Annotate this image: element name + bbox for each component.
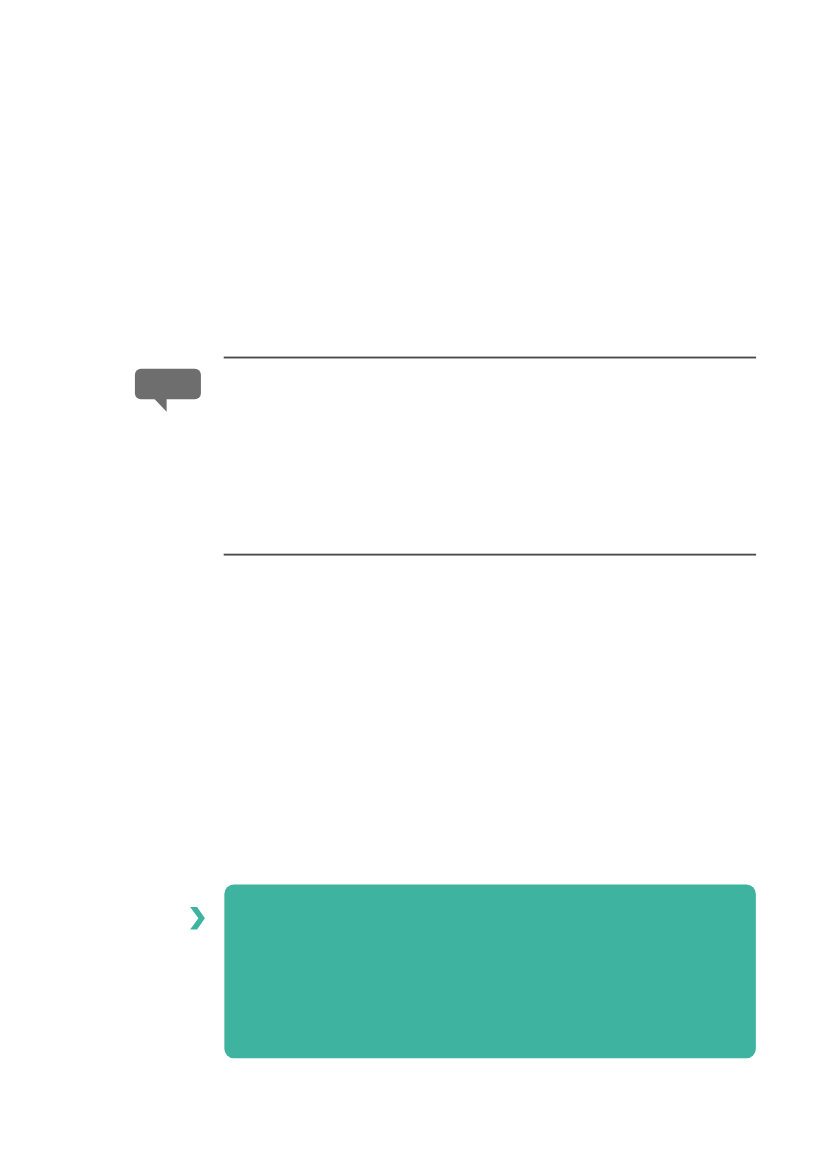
button[interactable]: Card: [224, 884, 756, 1058]
button[interactable]: Comment: [135, 369, 201, 412]
button[interactable]: Expand: [190, 907, 206, 931]
